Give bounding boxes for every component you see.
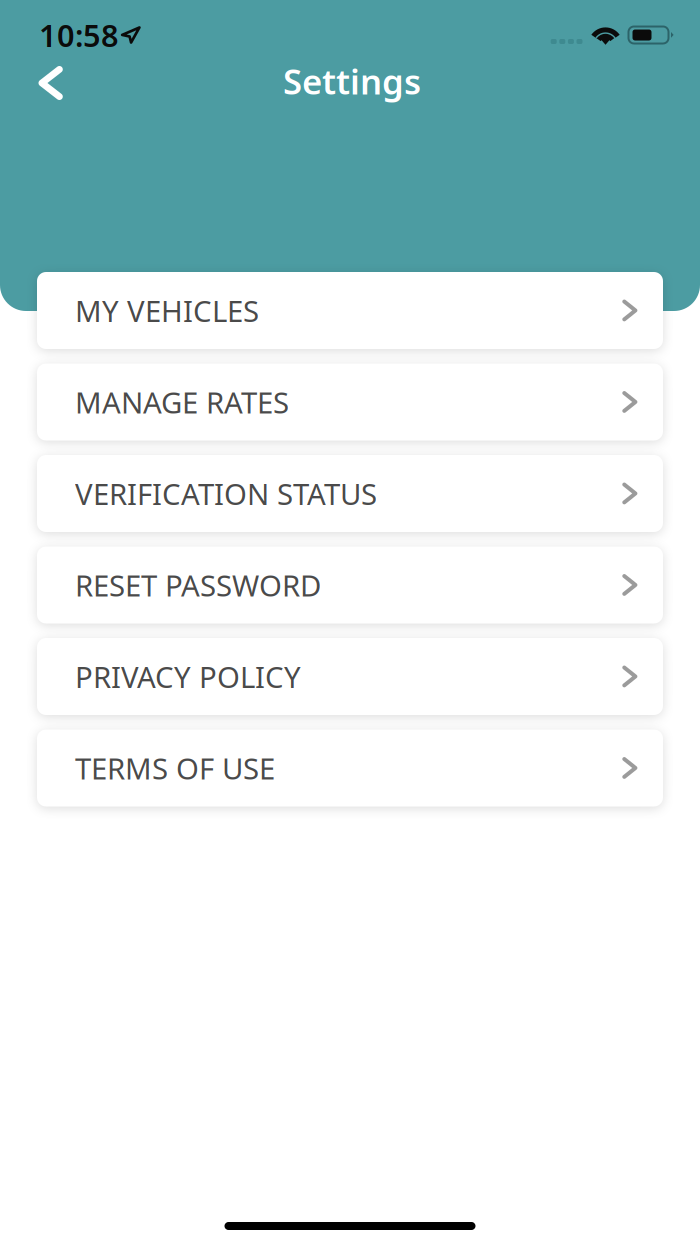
staticText: MANAGE RATES bbox=[75, 382, 289, 421]
staticText: MY VEHICLES bbox=[75, 291, 259, 330]
button[interactable]: MANAGE RATES bbox=[37, 363, 663, 440]
button[interactable]: RESET PASSWORD bbox=[37, 546, 663, 623]
staticText: PRIVACY POLICY bbox=[75, 657, 301, 696]
staticText: 10:58 bbox=[39, 15, 119, 55]
button[interactable]: MY VEHICLES bbox=[37, 272, 663, 349]
staticText: RESET PASSWORD bbox=[75, 565, 321, 604]
button[interactable]: PRIVACY POLICY bbox=[37, 638, 663, 715]
staticText: VERIFICATION STATUS bbox=[75, 474, 377, 513]
button[interactable]: Back bbox=[0, 63, 79, 103]
button[interactable]: VERIFICATION STATUS bbox=[37, 455, 663, 532]
staticText: Settings bbox=[283, 58, 421, 104]
staticText: TERMS OF USE bbox=[75, 748, 275, 787]
button[interactable]: TERMS OF USE bbox=[37, 729, 663, 806]
